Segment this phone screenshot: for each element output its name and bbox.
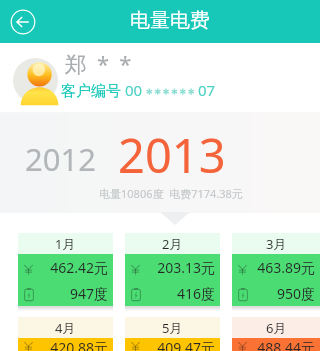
- staticText: 郑 * *: [65, 48, 134, 78]
- staticText: 1月: [55, 235, 76, 253]
- staticText: 5月: [162, 319, 183, 337]
- button[interactable]: 郑 * *: [0, 43, 320, 113]
- staticText: 409.47元: [141, 338, 215, 351]
- button[interactable]: 2月: [125, 233, 220, 311]
- button[interactable]: 2013: [118, 123, 226, 187]
- staticText: 2月: [162, 235, 183, 253]
- button[interactable]: 4月: [18, 317, 113, 351]
- staticText: 462.42元: [34, 258, 108, 277]
- staticText: 00: [125, 80, 143, 100]
- staticText: 电量10806度 电费7174.38元: [99, 186, 243, 201]
- button[interactable]: 3月: [232, 233, 320, 311]
- staticText: 电量电费: [130, 8, 210, 33]
- button[interactable]: 6月: [232, 317, 320, 351]
- staticText: 4月: [55, 319, 76, 337]
- staticText: 3月: [266, 235, 287, 253]
- button[interactable]: 2012: [25, 138, 96, 180]
- button[interactable]: 5月: [125, 317, 220, 351]
- button[interactable]: Back: [10, 9, 36, 35]
- staticText: 463.89元: [248, 258, 315, 277]
- button[interactable]: 1月: [18, 233, 113, 311]
- staticText: 07: [198, 80, 216, 100]
- staticText: 6月: [266, 319, 287, 337]
- staticText: 950度: [247, 284, 315, 303]
- staticText: 客户编号: [61, 80, 125, 100]
- staticText: 488.44元: [248, 338, 315, 351]
- staticText: 947度: [33, 284, 108, 303]
- staticText: 420.88元: [34, 338, 108, 351]
- staticText: 416度: [140, 284, 215, 303]
- staticText: 203.13元: [141, 258, 215, 277]
